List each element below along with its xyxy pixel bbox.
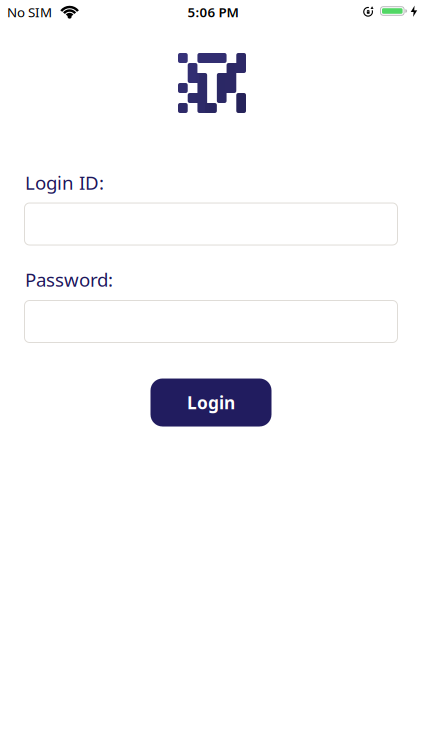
staticText: No SIM — [7, 3, 52, 21]
staticText: 5:06 PM — [187, 3, 238, 21]
staticText: Login ID: — [25, 170, 104, 195]
button[interactable]: Login ID — [24, 202, 398, 245]
button[interactable]: Login — [150, 378, 271, 426]
staticText: Login — [187, 391, 235, 414]
button[interactable]: Password — [24, 300, 398, 343]
staticText: Password: — [25, 267, 113, 292]
